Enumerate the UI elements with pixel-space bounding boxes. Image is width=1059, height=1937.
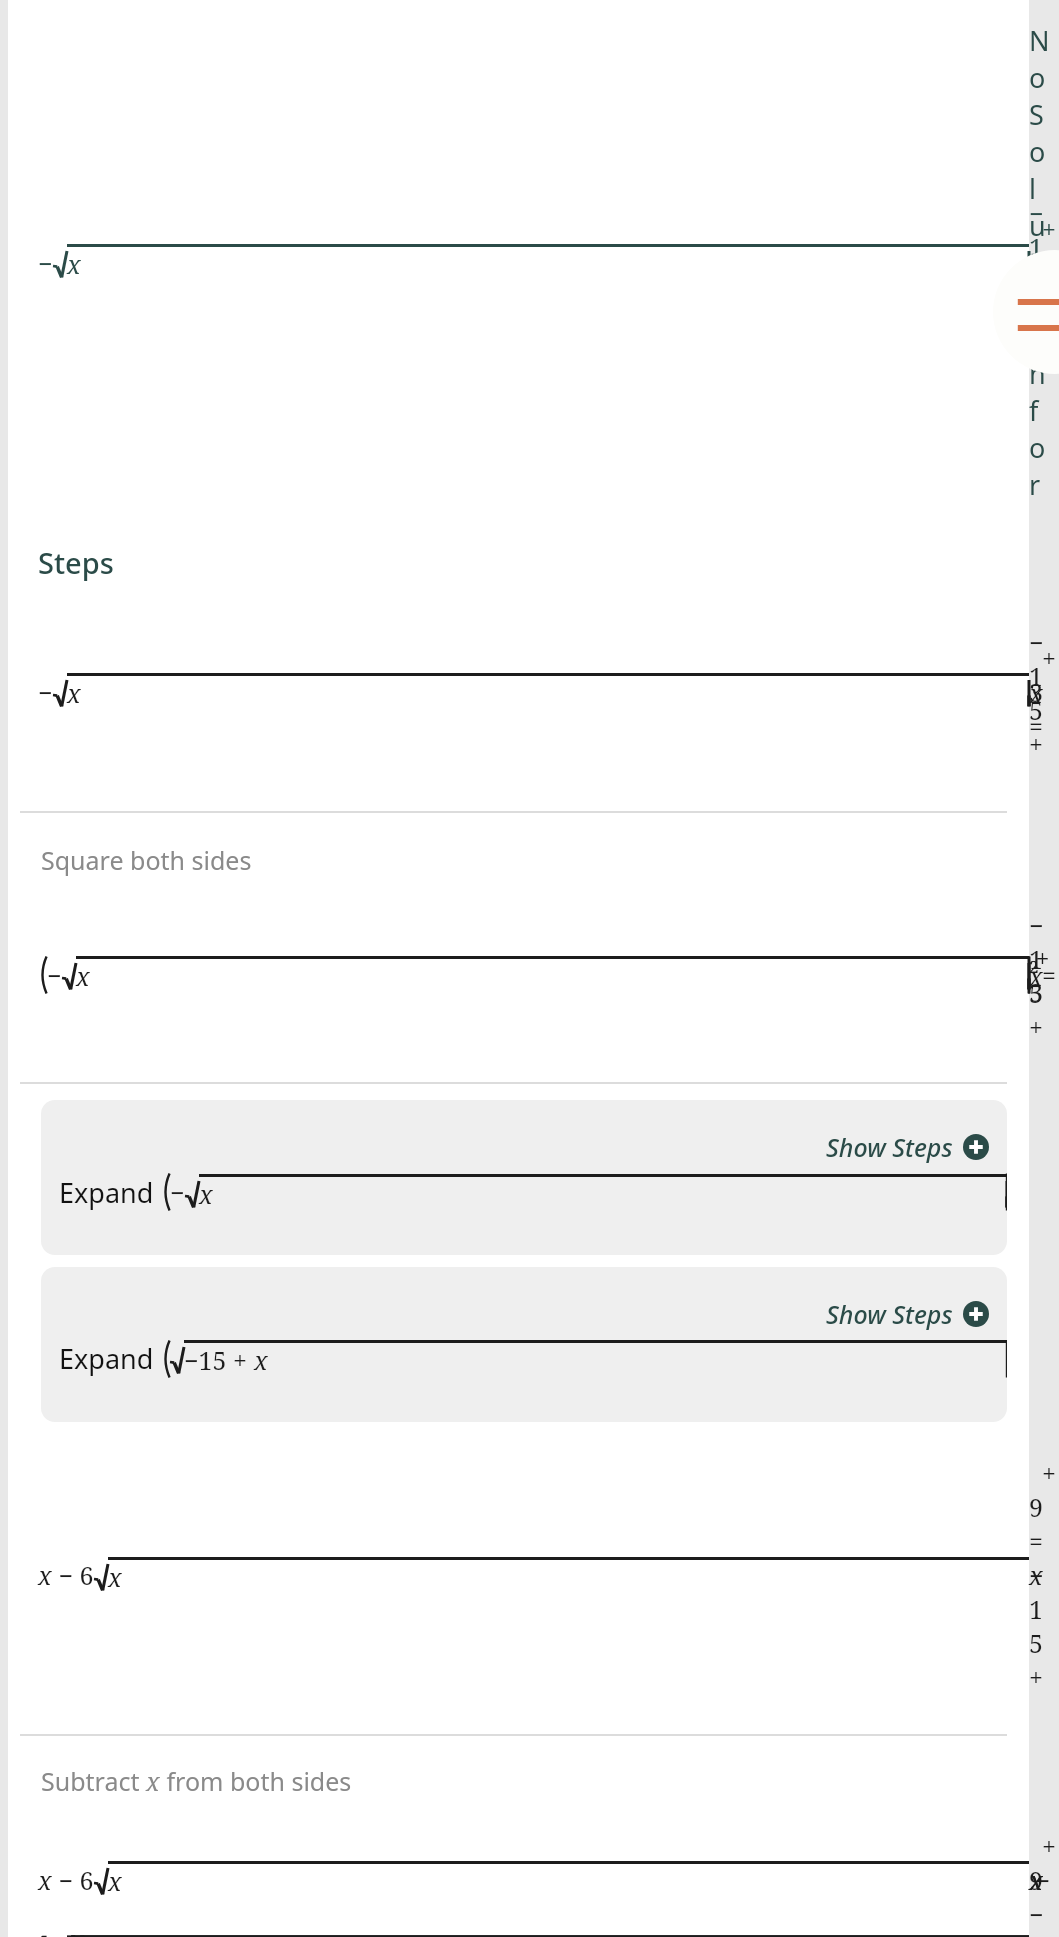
staticText: − xyxy=(170,1175,185,1209)
staticText: − 6 xyxy=(52,1558,94,1592)
staticText: x xyxy=(254,1343,268,1377)
button[interactable]: Show Steps xyxy=(41,1100,1007,1255)
staticText: Square both sides xyxy=(41,843,252,877)
staticText: x xyxy=(76,959,90,993)
staticText: x xyxy=(108,1560,122,1594)
staticText: − xyxy=(38,246,53,280)
button[interactable]: Show Steps xyxy=(41,1267,1007,1422)
staticText: − xyxy=(38,675,53,709)
staticText: x xyxy=(67,247,81,281)
staticText: Subtract xyxy=(41,1764,146,1798)
staticText: −15 + xyxy=(184,1343,254,1377)
staticText: x xyxy=(146,1764,160,1798)
button[interactable]: Equation tools xyxy=(993,250,1059,374)
staticText: x xyxy=(38,1558,52,1592)
staticText: from both sides xyxy=(160,1764,352,1798)
other: Show steps xyxy=(963,1301,989,1327)
staticText: x xyxy=(67,676,81,710)
staticText: Expand xyxy=(59,1340,161,1377)
button[interactable]: Show Steps xyxy=(822,1295,993,1333)
staticText: Steps xyxy=(38,543,114,582)
staticText: Expand xyxy=(59,1174,161,1211)
staticText: − 6 xyxy=(52,1863,94,1897)
staticText: Show Steps xyxy=(826,1297,953,1331)
button[interactable]: Show Steps xyxy=(822,1128,993,1166)
staticText: x xyxy=(38,1863,52,1897)
staticText: Show Steps xyxy=(826,1130,953,1164)
other: Show steps xyxy=(963,1134,989,1160)
staticText: x xyxy=(108,1864,122,1898)
staticText: x xyxy=(199,1177,213,1211)
staticText: − xyxy=(47,958,62,992)
